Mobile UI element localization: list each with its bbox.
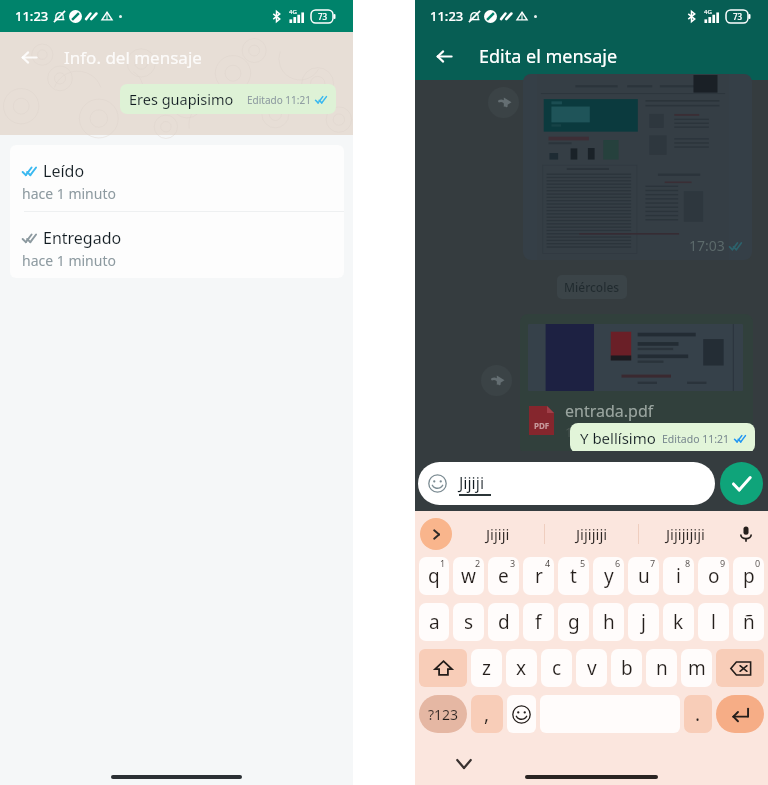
button[interactable]: v: [576, 649, 607, 687]
staticText: Y bellísimo: [580, 428, 656, 448]
staticText: Jijijijiji: [666, 524, 705, 544]
staticText: ?123: [428, 705, 459, 724]
staticText: r: [535, 563, 543, 589]
staticText: 8: [685, 557, 691, 569]
button[interactable]: Jijijijiji: [639, 511, 732, 557]
staticText: 73: [733, 11, 743, 22]
button[interactable]: Shift: [419, 649, 467, 687]
staticText: Eres guapisimo: [129, 89, 234, 109]
button[interactable]: Back: [429, 41, 459, 71]
button[interactable]: s: [453, 603, 484, 641]
staticText: 2: [475, 557, 481, 569]
button[interactable]: Send: [720, 462, 763, 505]
staticText: Jijijiji: [576, 524, 608, 544]
staticText: 4: [545, 557, 551, 569]
button[interactable]: y: [593, 557, 624, 595]
button[interactable]: o: [698, 557, 729, 595]
staticText: i: [676, 563, 681, 589]
staticText: m: [688, 655, 706, 681]
staticText: l: [711, 609, 716, 635]
button[interactable]: Enter: [716, 695, 764, 733]
button[interactable]: Eres guapisimo: [120, 84, 336, 114]
staticText: Entregado: [43, 227, 122, 249]
button[interactable]: r: [523, 557, 554, 595]
button[interactable]: Hide keyboard: [453, 753, 475, 775]
button[interactable]: ñ: [733, 603, 764, 641]
button[interactable]: Voice input: [732, 520, 760, 548]
button[interactable]: j: [628, 603, 659, 641]
button[interactable]: k: [663, 603, 694, 641]
button[interactable]: x: [506, 649, 537, 687]
staticText: j: [641, 609, 646, 635]
staticText: ñ: [743, 609, 755, 635]
button[interactable]: Jijiji: [418, 462, 715, 505]
staticText: ,: [484, 701, 490, 727]
button[interactable]: g: [558, 603, 589, 641]
button[interactable]: p: [733, 557, 764, 595]
staticText: 3: [510, 557, 516, 569]
staticText: 11:23: [430, 7, 464, 25]
button[interactable]: a: [419, 603, 449, 641]
button[interactable]: e: [488, 557, 519, 595]
button[interactable]: u: [628, 557, 659, 595]
staticText: 1 página • 1,9 MB • PDF: [565, 423, 708, 441]
button[interactable]: q: [419, 557, 449, 595]
staticText: Info. del mensaje: [64, 46, 202, 69]
button[interactable]: PDF: [520, 314, 753, 455]
staticText: 11:23: [15, 7, 49, 25]
staticText: e: [498, 563, 509, 589]
button[interactable]: Backspace: [716, 649, 764, 687]
button[interactable]: Back: [415, 32, 768, 80]
staticText: p: [743, 563, 755, 589]
button[interactable]: Forward: [488, 87, 519, 118]
staticText: f: [535, 609, 542, 635]
staticText: Edita el mensaje: [479, 44, 618, 69]
staticText: c: [552, 655, 562, 681]
button[interactable]: h: [593, 603, 624, 641]
button[interactable]: ?123: [419, 695, 467, 733]
staticText: Leído: [43, 160, 85, 182]
button[interactable]: 17:03: [523, 74, 752, 260]
button[interactable]: t: [558, 557, 589, 595]
staticText: z: [482, 655, 491, 681]
staticText: Miércoles: [564, 279, 620, 295]
staticText: g: [568, 609, 580, 635]
button[interactable]: i: [663, 557, 694, 595]
button[interactable]: .: [684, 695, 712, 733]
button[interactable]: Jijiji: [452, 511, 544, 557]
button[interactable]: b: [611, 649, 642, 687]
staticText: n: [656, 655, 668, 681]
staticText: v: [587, 655, 597, 681]
button[interactable]: f: [523, 603, 554, 641]
staticText: y: [604, 563, 614, 589]
button[interactable]: n: [646, 649, 677, 687]
button[interactable]: c: [541, 649, 572, 687]
staticText: o: [708, 563, 720, 589]
button[interactable]: Jijijiji: [545, 511, 638, 557]
button[interactable]: Miércoles: [557, 275, 627, 299]
button[interactable]: w: [453, 557, 484, 595]
staticText: t: [570, 563, 577, 589]
staticText: Editado 11:21: [247, 93, 311, 107]
button[interactable]: Entregado: [10, 212, 344, 278]
button[interactable]: Y bellísimo: [570, 423, 755, 453]
staticText: w: [461, 563, 476, 589]
button[interactable]: Leído: [10, 145, 344, 211]
button[interactable]: m: [681, 649, 712, 687]
button[interactable]: ,: [471, 695, 503, 733]
button[interactable]: z: [471, 649, 502, 687]
staticText: 5: [580, 557, 586, 569]
staticText: 17:03: [689, 236, 725, 255]
button[interactable]: d: [488, 603, 519, 641]
staticText: 4G: [289, 8, 297, 16]
staticText: x: [516, 655, 527, 681]
staticText: d: [498, 609, 510, 635]
button[interactable]: More suggestions: [420, 518, 452, 550]
button[interactable]: Forward: [481, 365, 512, 396]
button[interactable]: Back: [0, 32, 353, 82]
staticText: k: [673, 609, 684, 635]
button[interactable]: Back: [14, 42, 44, 72]
button[interactable]: l: [698, 603, 729, 641]
button[interactable]: Emoji: [507, 695, 536, 733]
